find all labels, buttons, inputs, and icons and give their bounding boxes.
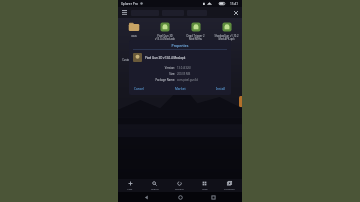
button[interactable]: New (118, 179, 142, 192)
button[interactable]: Menu (121, 9, 128, 16)
staticText: Package Name: (155, 78, 175, 82)
button[interactable]: Dead Trigger 2 Mod Menu (180, 20, 211, 44)
staticText: 15:41 (230, 2, 239, 6)
staticText: Dead Trigger 2 Mod Menu (186, 34, 205, 40)
staticText: Pixel Gun 3D v13.0.4 Mod.apk (155, 34, 175, 40)
staticText: Refresh (175, 187, 184, 190)
button[interactable]: Install (196, 86, 227, 92)
button[interactable]: Cancel (133, 86, 165, 92)
button[interactable]: Custom Roms v1.6 0.pdf (118, 44, 149, 68)
staticText: Version: (164, 66, 175, 70)
button[interactable]: Home (176, 193, 185, 202)
staticText: Custom Roms v1.6 0.pdf (122, 58, 145, 64)
staticText: Install (216, 87, 226, 91)
button[interactable]: Market (165, 86, 196, 92)
staticText: Size: (169, 72, 175, 76)
button[interactable]: Windows (217, 179, 242, 192)
staticText: ShadowGun v1.10.2 Mod APK.apk (214, 34, 239, 40)
staticText: Market (175, 87, 186, 91)
button[interactable]: asus (118, 20, 149, 44)
staticText: View (202, 187, 208, 190)
button[interactable]: Recents (209, 193, 218, 202)
staticText: Pixel Gun 3D v13.0.4 Mod.apk (145, 56, 186, 60)
button[interactable]: Refresh (167, 179, 192, 192)
button[interactable]: Pixel Gun 3D v13.0.4 Mod.apk (149, 20, 180, 44)
staticText: Windows (224, 187, 235, 190)
button[interactable]: Close (232, 9, 239, 16)
staticText: asus (131, 34, 137, 38)
staticText: New (127, 187, 133, 190)
button[interactable]: ShadowGun v1.10.2 Mod APK.apk (211, 20, 242, 44)
button[interactable]: View (192, 179, 217, 192)
staticText: Properties (133, 43, 227, 48)
staticText: 13.0.4(326) (177, 66, 191, 70)
button[interactable]: Search (142, 179, 167, 192)
staticText: Cancel (134, 87, 144, 91)
staticText: Xplorer Pro (121, 2, 138, 6)
staticText: com.pixel.gun3d (177, 78, 198, 82)
staticText: 200.05 MB (177, 72, 191, 76)
button[interactable]: Side panel (239, 96, 242, 107)
staticText: Search (151, 187, 159, 190)
button[interactable]: Back (142, 193, 151, 202)
